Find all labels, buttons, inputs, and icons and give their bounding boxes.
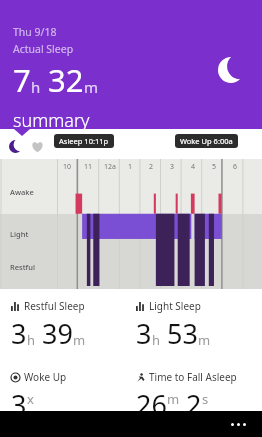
button[interactable]: More options (227, 419, 250, 430)
staticText: m (73, 331, 86, 349)
staticText: Time to Fall Asleep (149, 370, 237, 384)
staticText: Restful (10, 262, 35, 272)
button[interactable]: Asleep 10:11p (54, 134, 114, 148)
staticText: summary (13, 108, 90, 129)
staticText: m (84, 77, 99, 97)
staticText: 4 (191, 162, 196, 172)
staticText: 3 (11, 315, 27, 352)
button[interactable]: Time to Fall Asleep (136, 370, 262, 411)
staticText: Light (10, 229, 29, 239)
button[interactable]: Light Sleep (136, 299, 262, 352)
button[interactable]: Heart rate tab (28, 137, 47, 156)
staticText: Woke Up (24, 370, 67, 384)
staticText: 6 (233, 162, 238, 172)
staticText: 3 (136, 315, 152, 352)
staticText: 7 (13, 59, 31, 101)
staticText: Asleep 10:11p (59, 136, 109, 146)
staticText: 53 (167, 315, 198, 352)
staticText: 3 (170, 162, 175, 172)
button[interactable]: Woke Up 6:00a (175, 134, 238, 148)
staticText: 2 (149, 162, 154, 172)
staticText: 10 (63, 162, 72, 172)
staticText: 26 (136, 386, 167, 411)
other: Sleep (218, 57, 244, 83)
staticText: 39 (42, 315, 73, 352)
staticText: 3 (11, 386, 27, 411)
button[interactable]: Sleep tab (6, 137, 25, 156)
staticText: Woke Up 6:00a (180, 136, 233, 146)
staticText: s (202, 390, 209, 408)
staticText: h (31, 77, 41, 97)
staticText: 1 (128, 162, 133, 172)
staticText: Thu 9/18 (13, 25, 57, 39)
staticText: 5 (212, 162, 217, 172)
staticText: Awake (10, 187, 34, 197)
button[interactable]: Restful Sleep (11, 299, 136, 352)
staticText: m (167, 390, 180, 408)
staticText: 11 (84, 162, 93, 172)
staticText: 32 (48, 59, 84, 101)
staticText: h (27, 331, 36, 349)
staticText: 12a (104, 162, 116, 172)
button[interactable]: Woke Up (11, 370, 136, 411)
staticText: h (152, 331, 161, 349)
staticText: m (198, 331, 211, 349)
staticText: Actual Sleep (13, 42, 74, 56)
staticText: x (27, 390, 34, 408)
staticText: 2 (186, 386, 202, 411)
staticText: Restful Sleep (24, 299, 85, 313)
staticText: Light Sleep (149, 299, 201, 313)
